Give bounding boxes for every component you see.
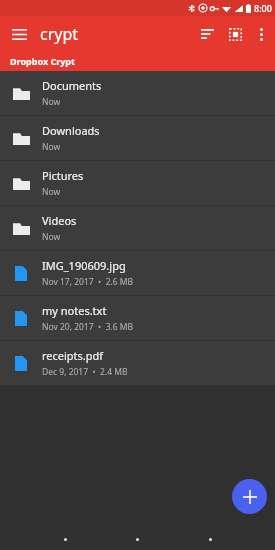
button[interactable]: Back <box>54 528 76 550</box>
staticText: Now <box>42 141 61 153</box>
button[interactable]: Videos <box>0 206 275 250</box>
staticText: Now <box>42 186 61 198</box>
button[interactable]: Pictures <box>0 161 275 205</box>
staticText: 8:00 <box>254 2 272 14</box>
button[interactable]: Select all <box>221 20 249 48</box>
button[interactable]: Downloads <box>0 116 275 160</box>
staticText: Videos <box>42 213 77 228</box>
button[interactable]: Recents <box>199 528 221 550</box>
staticText: Nov 17, 2017 • 2.6 MB <box>42 276 134 288</box>
staticText: Documents <box>42 78 102 93</box>
staticText: crypt <box>40 23 79 45</box>
button[interactable]: my notes.txt <box>0 296 275 340</box>
button[interactable]: receipts.pdf <box>0 341 275 385</box>
button[interactable]: More options <box>249 22 273 46</box>
staticText: my notes.txt <box>42 303 107 318</box>
button[interactable]: Open navigation drawer <box>6 21 32 47</box>
button[interactable]: IMG_190609.jpg <box>0 251 275 295</box>
staticText: receipts.pdf <box>42 348 104 363</box>
staticText: Downloads <box>42 123 100 138</box>
staticText: Now <box>42 231 61 243</box>
button[interactable]: Documents <box>0 71 275 115</box>
staticText: Nov 20, 2017 • 3.6 MB <box>42 321 134 333</box>
button[interactable]: Sort <box>193 20 221 48</box>
staticText: Dec 9, 2017 • 2.4 MB <box>42 366 128 378</box>
staticText: Dropbox Crypt <box>10 55 75 67</box>
staticText: Now <box>42 96 61 108</box>
button[interactable]: Home <box>126 528 148 550</box>
button[interactable]: Add <box>232 479 267 514</box>
staticText: IMG_190609.jpg <box>42 258 126 273</box>
staticText: Pictures <box>42 168 84 183</box>
